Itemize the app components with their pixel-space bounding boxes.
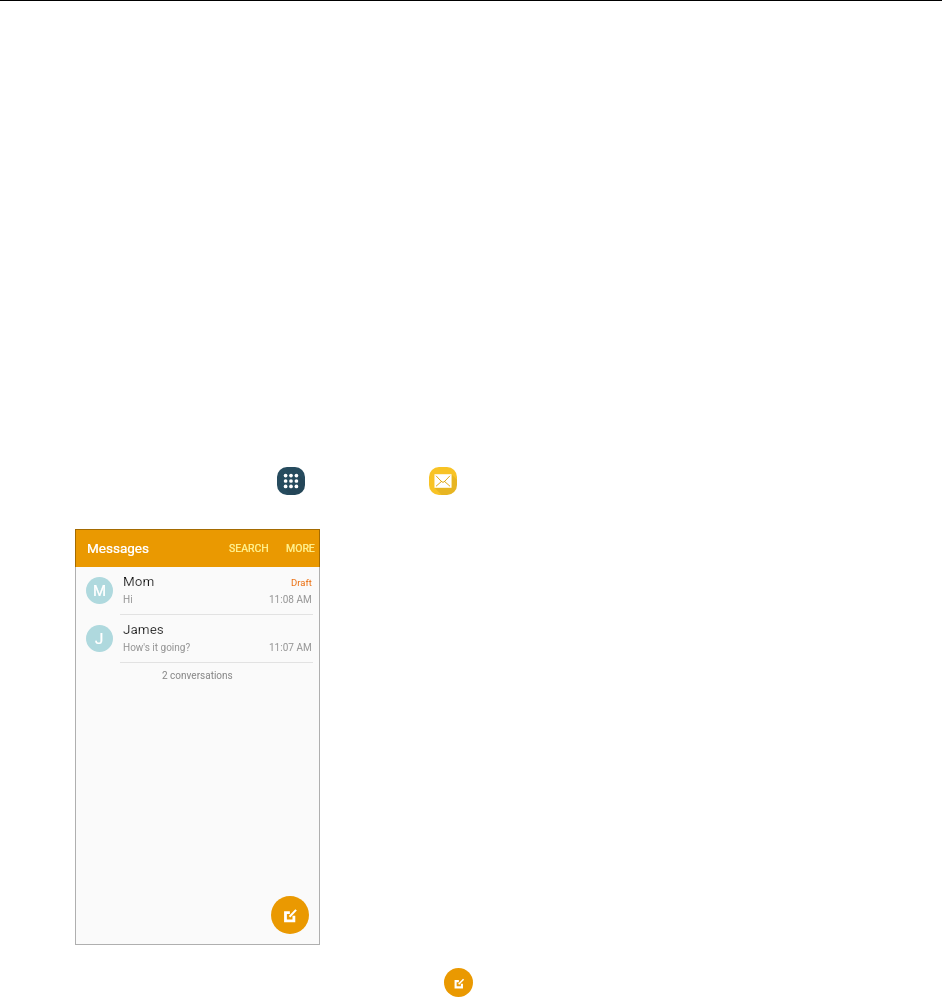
button[interactable]: MORE — [281, 535, 320, 561]
staticText: Mom — [123, 573, 155, 589]
button[interactable]: Messages app — [429, 467, 457, 495]
staticText: Hi — [123, 594, 133, 606]
button[interactable]: Compose new message — [271, 896, 309, 934]
staticText: 2 conversations — [162, 670, 233, 682]
staticText: James — [123, 621, 164, 637]
staticText: SEARCH — [229, 542, 269, 554]
staticText: J — [95, 630, 104, 648]
button[interactable]: M — [75, 567, 320, 614]
staticText: M — [93, 582, 107, 600]
button[interactable]: J — [75, 615, 320, 662]
staticText: Draft — [291, 577, 312, 588]
button[interactable]: Compose new message — [444, 968, 473, 997]
staticText: 11:07 AM — [269, 642, 312, 654]
button[interactable]: Apps — [277, 467, 305, 495]
staticText: MORE — [286, 542, 315, 554]
staticText: 11:08 AM — [269, 594, 312, 606]
staticText: Messages — [87, 540, 149, 556]
button[interactable]: SEARCH — [224, 535, 274, 561]
staticText: How's it going? — [123, 642, 191, 654]
